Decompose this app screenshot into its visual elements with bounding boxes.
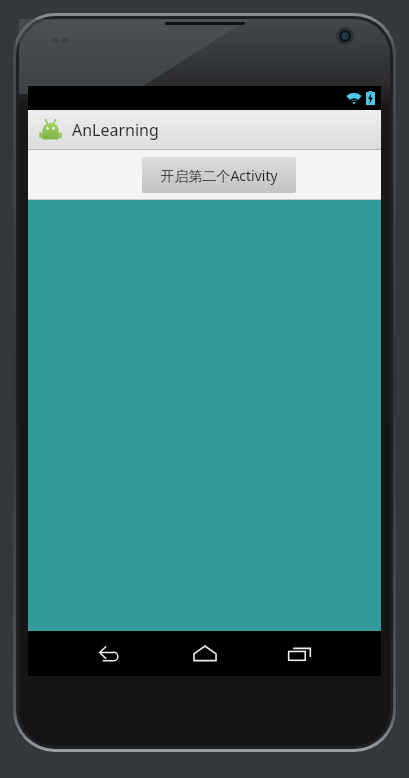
button[interactable]: Recent apps xyxy=(272,631,326,676)
staticText: 开启第二个Activity xyxy=(160,166,278,185)
button[interactable]: Home xyxy=(178,631,232,676)
button[interactable]: 开启第二个Activity xyxy=(142,157,296,193)
staticText: AnLearning xyxy=(72,119,159,141)
button[interactable]: Back xyxy=(84,631,138,676)
